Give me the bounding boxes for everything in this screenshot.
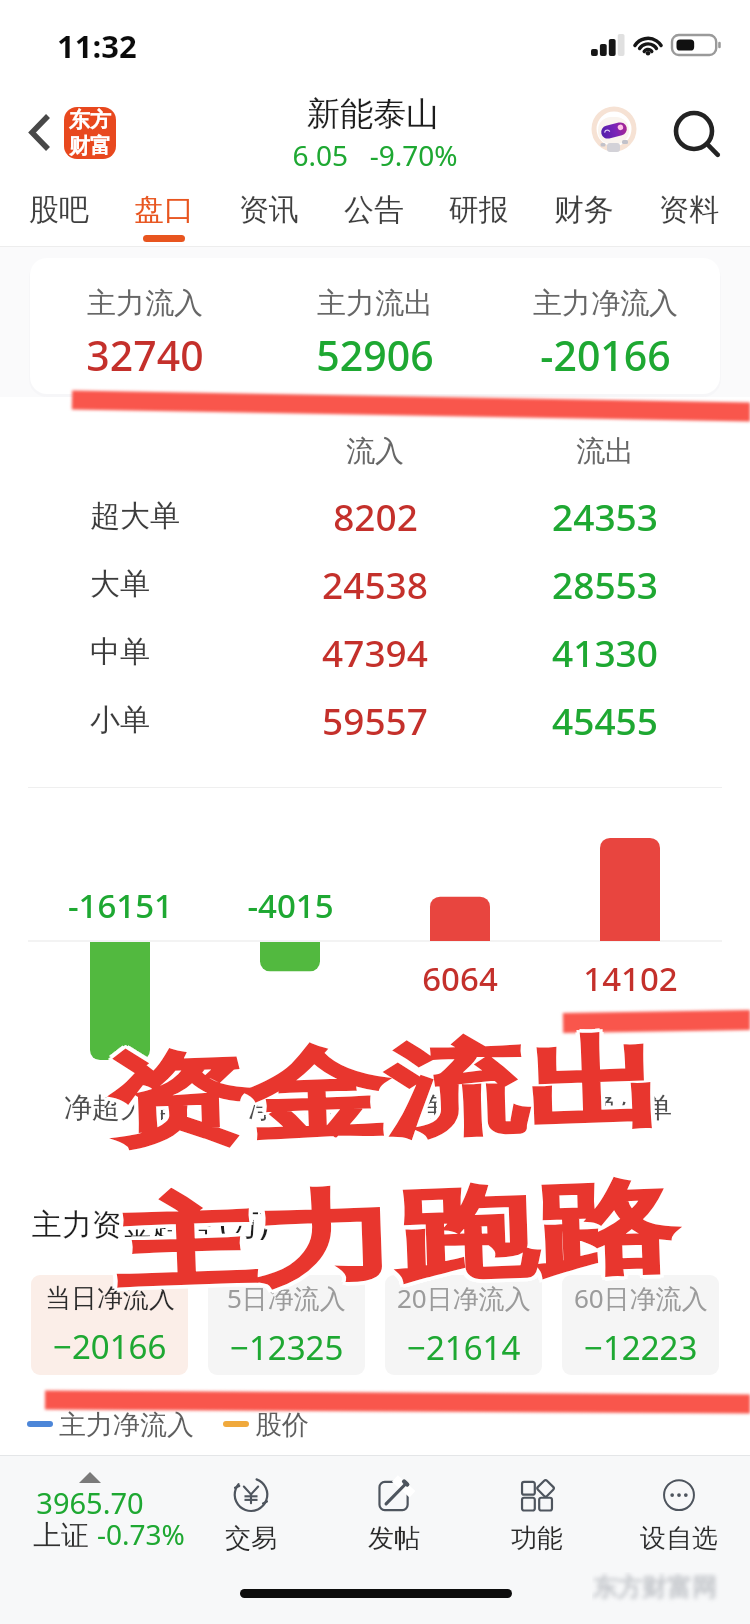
button[interactable]: 资讯 <box>217 178 321 247</box>
button[interactable]: Shanghai index <box>0 1456 205 1566</box>
staticText: -0.73% <box>97 1515 185 1549</box>
staticText: 主力跑路 <box>114 1169 678 1313</box>
button[interactable]: Search <box>669 102 725 158</box>
button[interactable]: AI assistant <box>585 104 641 160</box>
staticText: 32740 <box>86 327 204 383</box>
staticText: 净小单 <box>588 1090 672 1125</box>
staticText: 主力跑路 <box>111 1163 675 1306</box>
staticText: 主力流入 <box>87 285 203 322</box>
staticText: 47394 <box>322 627 428 677</box>
staticText: 小单 <box>90 701 150 739</box>
staticText: 盘口 <box>134 191 194 229</box>
staticText: 59557 <box>322 695 428 745</box>
staticText: 资金流出 <box>108 1021 672 1165</box>
button[interactable]: 发帖 <box>332 1462 456 1556</box>
staticText: 主力跑路 <box>118 1165 682 1309</box>
staticText: 主力资金趋势 (万) <box>32 1203 269 1244</box>
staticText: 主力净流入 <box>59 1408 194 1440</box>
button[interactable]: 研报 <box>427 178 531 247</box>
staticText: 6.05 -9.70% <box>292 136 458 174</box>
button[interactable]: 功能 <box>475 1462 599 1556</box>
staticText: 发帖 <box>368 1522 420 1555</box>
button[interactable]: 20日净流入 <box>385 1275 542 1375</box>
button[interactable] <box>0 686 750 754</box>
staticText: 资金流出 <box>107 1019 671 1162</box>
staticText: −12325 <box>230 1325 344 1370</box>
button[interactable]: 盘口 <box>112 178 216 247</box>
staticText: 资料 <box>659 191 719 229</box>
button[interactable] <box>0 550 750 618</box>
staticText: 设自选 <box>640 1522 718 1555</box>
button[interactable] <box>30 258 720 394</box>
button[interactable] <box>0 618 750 686</box>
staticText: 主力跑路 <box>114 1162 678 1306</box>
staticText: 资金流出 <box>104 1018 668 1162</box>
staticText: 41330 <box>552 627 658 677</box>
staticText: 28553 <box>552 559 658 609</box>
staticText: 资金流出 <box>107 1024 671 1168</box>
staticText: -16151 <box>68 883 173 928</box>
staticText: 主力跑路 <box>117 1168 681 1312</box>
staticText: −21614 <box>407 1325 521 1370</box>
button[interactable]: 财务 <box>532 178 636 247</box>
staticText: 东方财富网 <box>592 1572 717 1603</box>
button[interactable] <box>0 482 750 550</box>
staticText: 45455 <box>552 695 658 745</box>
staticText: 交易 <box>225 1522 277 1555</box>
staticText: 净中单 <box>418 1090 502 1125</box>
staticText: 股价 <box>255 1408 309 1440</box>
staticText: 60日净流入 <box>574 1280 708 1316</box>
button[interactable]: 5日净流入 <box>208 1275 365 1375</box>
staticText: 大单 <box>90 565 150 603</box>
staticText: 主力跑路 <box>117 1163 681 1306</box>
staticText: 8202 <box>333 491 418 541</box>
staticText: 功能 <box>511 1522 563 1555</box>
staticText: -20166 <box>540 327 671 383</box>
staticText: 主力流出 <box>317 285 433 322</box>
staticText: 新能泰山 <box>307 93 439 135</box>
staticText: -4015 <box>247 883 334 928</box>
button[interactable]: 资料 <box>637 178 741 247</box>
button[interactable]: 当日净流入 <box>31 1275 188 1375</box>
staticText: −20166 <box>53 1324 167 1369</box>
staticText: 流入 <box>346 433 404 470</box>
staticText: 主力跑路 <box>114 1166 678 1309</box>
staticText: 6064 <box>422 956 498 1001</box>
staticText: 股吧 <box>29 191 89 229</box>
staticText: 11:32 <box>57 25 137 67</box>
staticText: 资金流出 <box>101 1024 665 1168</box>
button[interactable]: 公告 <box>322 178 426 247</box>
staticText: 52906 <box>316 327 434 383</box>
staticText: 主力净流入 <box>533 285 678 322</box>
staticText: 主力跑路 <box>111 1168 675 1312</box>
button[interactable]: 股吧 <box>7 178 111 247</box>
staticText: 公告 <box>344 191 404 229</box>
button[interactable]: 60日净流入 <box>562 1275 719 1375</box>
staticText: 3965.70 <box>36 1483 144 1522</box>
staticText: −12223 <box>584 1325 698 1370</box>
staticText: 东方 <box>69 107 111 133</box>
staticText: 资金流出 <box>104 1025 668 1169</box>
staticText: 研报 <box>449 191 509 229</box>
staticText: 超大单 <box>90 497 180 535</box>
staticText: 中单 <box>90 633 150 671</box>
staticText: 流出 <box>576 433 634 470</box>
staticText: 财富 <box>69 133 111 159</box>
staticText: 5日净流入 <box>227 1280 346 1316</box>
staticText: 24353 <box>552 491 658 541</box>
staticText: 资金流出 <box>104 1022 668 1165</box>
staticText: 资讯 <box>239 191 299 229</box>
staticText: 当日净流入 <box>45 1282 175 1315</box>
button[interactable]: 设自选 <box>617 1462 741 1556</box>
staticText: 净超大单 <box>64 1090 176 1125</box>
staticText: 14102 <box>583 956 678 1001</box>
staticText: 资金流出 <box>100 1022 664 1165</box>
button[interactable]: 交易 <box>189 1462 313 1556</box>
button[interactable]: Back <box>12 104 68 160</box>
staticText: 20日净流入 <box>397 1280 531 1316</box>
button[interactable]: East Money <box>64 107 116 159</box>
staticText: 上证 <box>33 1515 97 1549</box>
staticText: 净大单 <box>248 1090 332 1125</box>
staticText: 资金流出 <box>101 1019 665 1162</box>
staticText: 主力跑路 <box>110 1166 674 1309</box>
